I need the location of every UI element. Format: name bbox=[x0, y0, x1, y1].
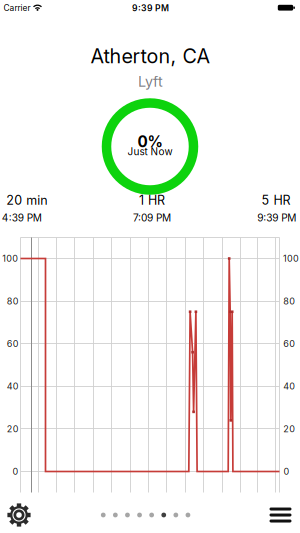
staticText: 20 bbox=[283, 423, 295, 434]
staticText: Atherton, CA bbox=[90, 44, 210, 68]
staticText: Carrier bbox=[3, 3, 30, 13]
staticText: 60 bbox=[7, 338, 19, 349]
staticText: 80 bbox=[283, 296, 295, 307]
staticText: 80 bbox=[7, 296, 19, 307]
staticText: 40 bbox=[7, 381, 19, 392]
staticText: 20 bbox=[7, 423, 19, 434]
staticText: 0 bbox=[12, 466, 18, 477]
button[interactable]: Settings bbox=[4, 500, 34, 530]
button[interactable]: Menu bbox=[266, 503, 294, 527]
staticText: 9:39 PM bbox=[132, 3, 169, 13]
staticText: 60 bbox=[283, 338, 295, 349]
staticText: 100 bbox=[2, 253, 18, 264]
staticText: 1 HR bbox=[139, 193, 165, 208]
staticText: 4:39 PM bbox=[2, 212, 42, 224]
staticText: 20 min bbox=[6, 193, 47, 208]
staticText: 9:39 PM bbox=[257, 212, 296, 224]
staticText: Lyft bbox=[138, 73, 163, 90]
staticText: 5 HR bbox=[261, 193, 290, 208]
staticText: 100 bbox=[283, 253, 299, 264]
staticText: 0% bbox=[137, 132, 162, 151]
staticText: 0 bbox=[283, 466, 289, 477]
staticText: Just Now bbox=[127, 145, 172, 158]
staticText: 7:09 PM bbox=[133, 212, 171, 224]
staticText: 40 bbox=[283, 381, 295, 392]
